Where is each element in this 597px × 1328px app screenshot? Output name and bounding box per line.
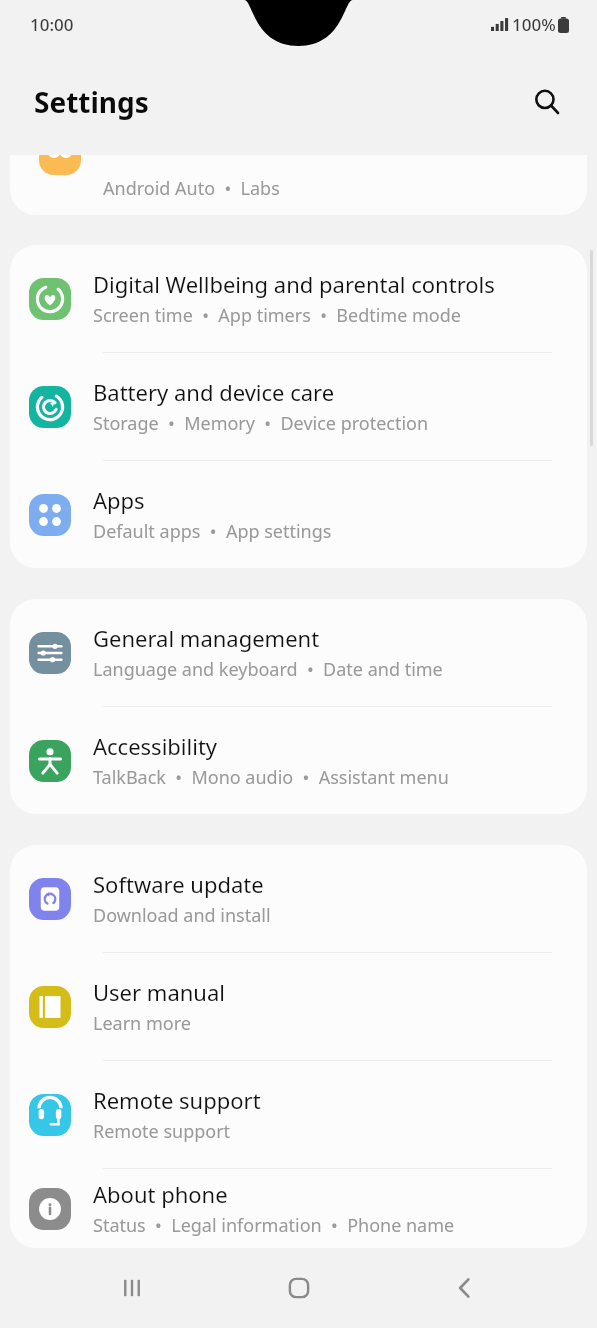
button[interactable]: About phone bbox=[10, 1169, 587, 1248]
button[interactable]: Battery and device care bbox=[10, 353, 587, 460]
staticText: General management bbox=[93, 623, 320, 653]
button[interactable]: Back bbox=[430, 1253, 500, 1323]
staticText: User manual bbox=[93, 977, 225, 1007]
staticText: 10:00 bbox=[30, 13, 74, 36]
staticText: Screen time • App timers • Bedtime mode bbox=[93, 303, 461, 328]
button[interactable]: Remote support bbox=[10, 1061, 587, 1168]
button[interactable]: Software update bbox=[10, 845, 587, 952]
button[interactable]: Home bbox=[264, 1253, 334, 1323]
button[interactable]: Digital Wellbeing and parental controls bbox=[10, 245, 587, 352]
staticText: Remote support bbox=[93, 1085, 261, 1115]
button[interactable]: Apps bbox=[10, 461, 587, 568]
staticText: Remote support bbox=[93, 1119, 231, 1144]
staticText: About phone bbox=[93, 1179, 228, 1209]
staticText: Status • Legal information • Phone name bbox=[93, 1213, 455, 1238]
staticText: Storage • Memory • Device protection bbox=[93, 411, 429, 436]
staticText: Language and keyboard • Date and time bbox=[93, 657, 443, 682]
staticText: Download and install bbox=[93, 903, 271, 928]
staticText: TalkBack • Mono audio • Assistant menu bbox=[93, 765, 449, 790]
button[interactable]: User manual bbox=[10, 953, 587, 1060]
staticText: Digital Wellbeing and parental controls bbox=[93, 269, 495, 299]
staticText: Battery and device care bbox=[93, 377, 335, 407]
button[interactable]: Recents bbox=[97, 1253, 167, 1323]
staticText: Learn more bbox=[93, 1011, 191, 1036]
staticText: Apps bbox=[93, 485, 145, 515]
staticText: Android Auto • Labs bbox=[103, 176, 280, 201]
staticText: Default apps • App settings bbox=[93, 519, 332, 544]
button[interactable]: Search bbox=[519, 74, 575, 130]
button[interactable]: Android Auto • Labs bbox=[10, 155, 587, 215]
staticText: Accessibility bbox=[93, 731, 218, 761]
staticText: Settings bbox=[34, 83, 149, 121]
staticText: Software update bbox=[93, 869, 264, 899]
button[interactable]: General management bbox=[10, 599, 587, 706]
button[interactable]: Accessibility bbox=[10, 707, 587, 814]
staticText: 100% bbox=[512, 13, 556, 36]
